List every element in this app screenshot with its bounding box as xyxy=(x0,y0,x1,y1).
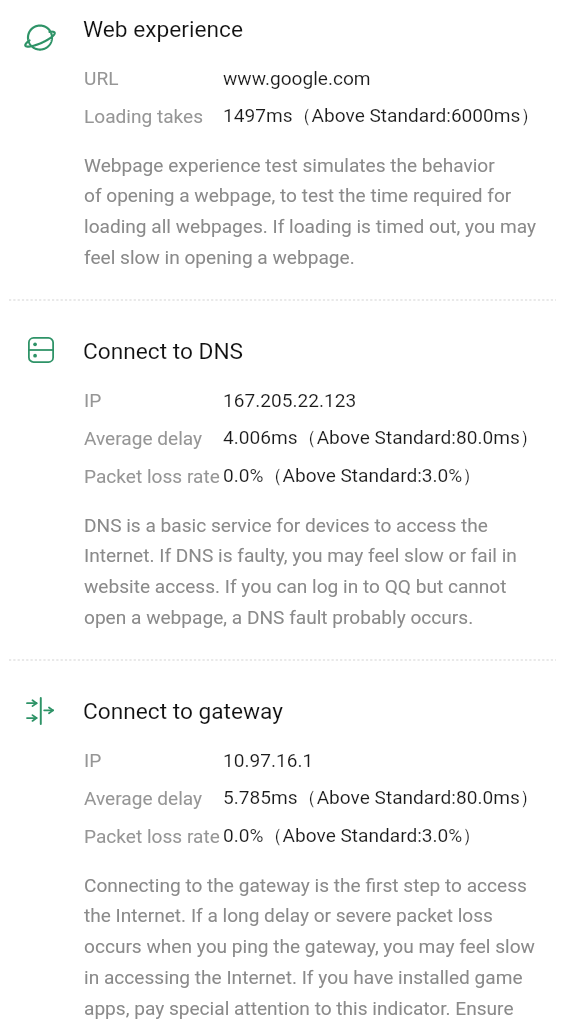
button[interactable]: Network gateway xyxy=(0,661,567,732)
staticText: Connect to gateway xyxy=(83,698,283,725)
staticText: Web experience xyxy=(83,16,243,43)
staticText: 167.205.22.123 xyxy=(223,389,357,411)
staticText: Loading takes xyxy=(84,105,223,127)
button[interactable]: DNS server xyxy=(0,301,567,659)
button[interactable]: Web experience test xyxy=(0,0,567,50)
staticText: 1497ms（Above Standard:6000ms） xyxy=(223,104,540,128)
staticText: Average delay xyxy=(84,427,223,449)
staticText: Average delay xyxy=(84,787,223,809)
staticText: 0.0%（Above Standard:3.0%） xyxy=(223,824,482,848)
staticText: 0.0%（Above Standard:3.0%） xyxy=(223,464,482,488)
staticText: www.google.com xyxy=(223,67,371,89)
staticText: Packet loss rate xyxy=(84,825,223,847)
staticText: 10.97.16.1 xyxy=(223,749,314,771)
staticText: Webpage experience test simulates the be… xyxy=(84,154,551,269)
button[interactable]: Web experience test xyxy=(0,0,567,299)
staticText: 4.006ms（Above Standard:80.0ms） xyxy=(223,426,539,450)
staticText: IP xyxy=(84,749,223,771)
staticText: 5.785ms（Above Standard:80.0ms） xyxy=(223,786,539,810)
button[interactable]: DNS server xyxy=(0,301,567,372)
staticText: Packet loss rate xyxy=(84,465,223,487)
staticText: Connect to DNS xyxy=(83,338,244,365)
staticText: URL xyxy=(84,67,223,89)
staticText: DNS is a basic service for devices to ac… xyxy=(84,514,551,629)
staticText: Connecting to the gateway is the first s… xyxy=(84,874,551,1024)
staticText: IP xyxy=(84,389,223,411)
button[interactable]: Network gateway xyxy=(0,661,567,1024)
